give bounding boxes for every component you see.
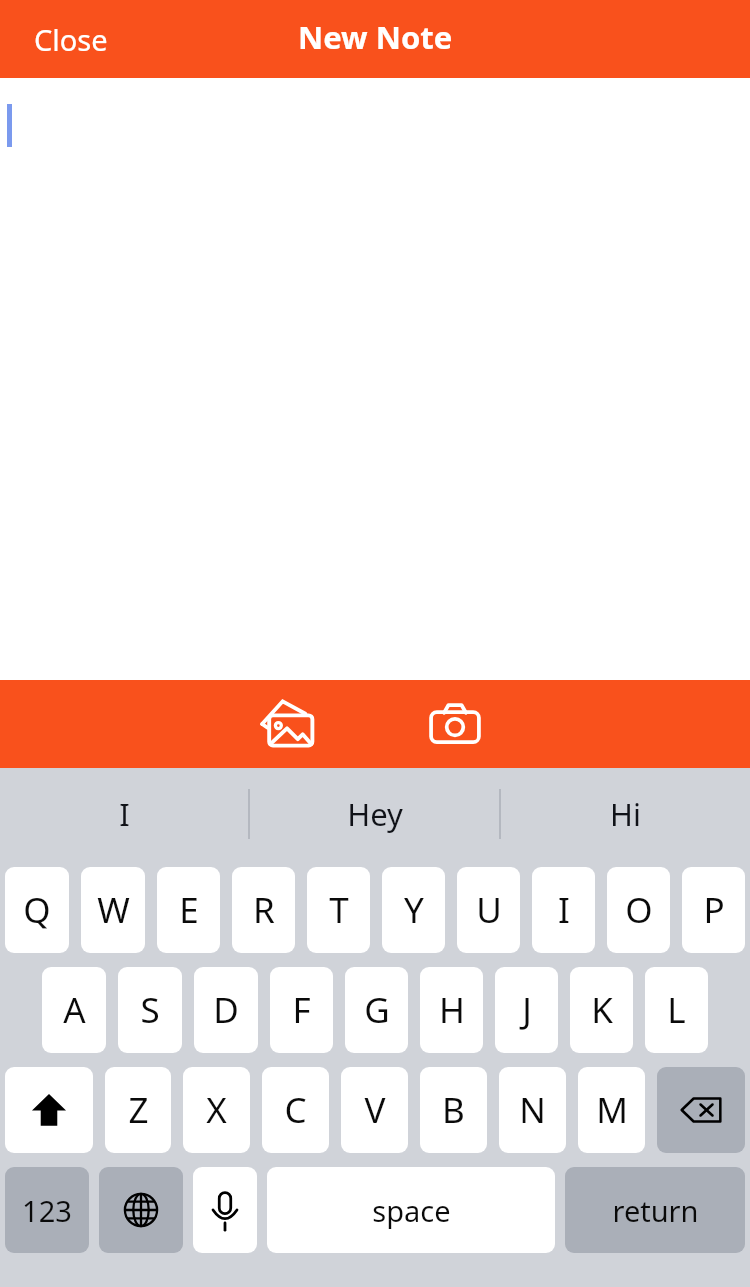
staticText: return	[612, 1191, 699, 1230]
staticText: M	[596, 1086, 628, 1134]
button[interactable]: Hey	[250, 768, 499, 860]
button[interactable]: Close	[16, 8, 126, 71]
staticText: X	[206, 1086, 227, 1134]
staticText: space	[372, 1191, 451, 1230]
button[interactable]: P	[682, 867, 745, 953]
button[interactable]: S	[118, 967, 182, 1053]
staticText: D	[213, 986, 239, 1034]
staticText: U	[476, 886, 502, 934]
button[interactable]: A	[42, 967, 106, 1053]
staticText: H	[439, 986, 465, 1034]
staticText: G	[364, 986, 390, 1034]
staticText: L	[667, 986, 686, 1034]
button[interactable]: return	[565, 1167, 745, 1253]
button[interactable]: F	[270, 967, 333, 1053]
staticText: Y	[404, 886, 424, 934]
button[interactable]: C	[262, 1067, 329, 1153]
staticText: T	[329, 886, 349, 934]
staticText: I	[558, 886, 570, 934]
staticText: A	[63, 986, 86, 1034]
button[interactable]: N	[499, 1067, 566, 1153]
button[interactable]: Next keyboard	[99, 1167, 183, 1253]
button[interactable]: H	[420, 967, 483, 1053]
staticText: I	[119, 793, 130, 835]
button[interactable]: V	[341, 1067, 408, 1153]
staticText: K	[591, 986, 613, 1034]
staticText: F	[292, 986, 311, 1034]
button[interactable]: U	[457, 867, 520, 953]
staticText: P	[703, 886, 725, 934]
button[interactable]: Camera	[424, 693, 486, 755]
staticText: Q	[23, 886, 51, 934]
button[interactable]: B	[420, 1067, 487, 1153]
staticText: C	[284, 1086, 307, 1134]
staticText: W	[97, 886, 130, 934]
staticText: New Note	[298, 16, 453, 58]
button[interactable]: I	[532, 867, 595, 953]
staticText: Z	[128, 1086, 149, 1134]
staticText: Hi	[610, 793, 641, 835]
staticText: R	[253, 886, 275, 934]
button[interactable]: Q	[5, 867, 69, 953]
button[interactable]: E	[157, 867, 220, 953]
button[interactable]: G	[345, 967, 408, 1053]
staticText: 123	[22, 1191, 72, 1230]
button[interactable]: K	[570, 967, 633, 1053]
button[interactable]: T	[307, 867, 370, 953]
button[interactable]: Dictate	[193, 1167, 257, 1253]
staticText: S	[140, 986, 160, 1034]
button[interactable]: D	[194, 967, 258, 1053]
button[interactable]: L	[645, 967, 708, 1053]
staticText: Hey	[347, 793, 403, 835]
staticText: V	[364, 1086, 386, 1134]
staticText: N	[519, 1086, 546, 1134]
button[interactable]: J	[495, 967, 558, 1053]
button[interactable]: 123	[5, 1167, 89, 1253]
button[interactable]: Z	[105, 1067, 171, 1153]
button[interactable]: Y	[382, 867, 445, 953]
staticText: E	[179, 886, 199, 934]
staticText: O	[625, 886, 653, 934]
button[interactable]: I	[0, 768, 248, 860]
button[interactable]: R	[232, 867, 295, 953]
button[interactable]: Photo library	[256, 693, 318, 755]
button[interactable]: X	[183, 1067, 250, 1153]
button[interactable]: O	[607, 867, 670, 953]
button[interactable]: M	[578, 1067, 645, 1153]
button[interactable]: Hi	[501, 768, 750, 860]
staticText: B	[442, 1086, 465, 1134]
staticText: J	[522, 986, 532, 1034]
button[interactable]: W	[81, 867, 145, 953]
button[interactable]: space	[267, 1167, 555, 1253]
button[interactable]: Backspace	[657, 1067, 745, 1153]
button[interactable]: Shift	[5, 1067, 93, 1153]
staticText: Close	[34, 20, 108, 59]
